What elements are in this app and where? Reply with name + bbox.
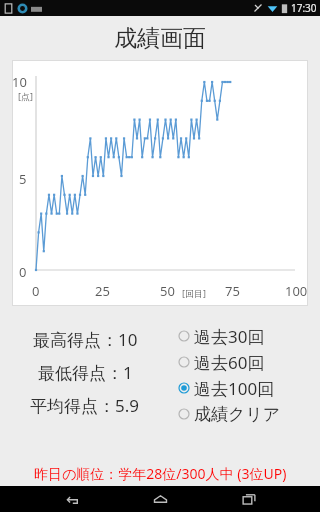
staticText: 50 (160, 282, 175, 300)
staticText: 0 (32, 282, 40, 300)
staticText: 過去60回 (194, 351, 265, 374)
button[interactable]: Back (55, 486, 89, 512)
staticText: 5 (19, 170, 27, 188)
staticText: 25 (95, 282, 110, 300)
staticText: 成績クリア (194, 404, 281, 425)
button[interactable]: 過去60回 (170, 349, 320, 375)
staticText: 昨日の順位：学年28位/300人中 (3位UP) (34, 464, 287, 483)
staticText: 過去100回 (194, 377, 275, 400)
button[interactable]: 過去30回 (170, 323, 320, 349)
staticText: 成績画面 (114, 24, 206, 53)
staticText: 過去30回 (194, 325, 265, 348)
staticText: [点] (18, 90, 33, 102)
staticText: 10 (12, 73, 27, 91)
button[interactable]: 過去100回 (170, 375, 320, 401)
staticText: 100 (285, 282, 308, 300)
staticText: 平均得点：5.9 (30, 394, 140, 416)
staticText: [回目] (182, 287, 206, 299)
button[interactable]: 成績クリア (170, 401, 320, 427)
staticText: 最低得点：1 (38, 361, 133, 383)
staticText: 75 (225, 282, 240, 300)
button[interactable]: Recent apps (232, 486, 266, 512)
staticText: 0 (19, 263, 27, 281)
staticText: 17:30 (291, 1, 317, 15)
button[interactable]: Home (143, 486, 177, 512)
staticText: 最高得点：10 (33, 328, 138, 350)
